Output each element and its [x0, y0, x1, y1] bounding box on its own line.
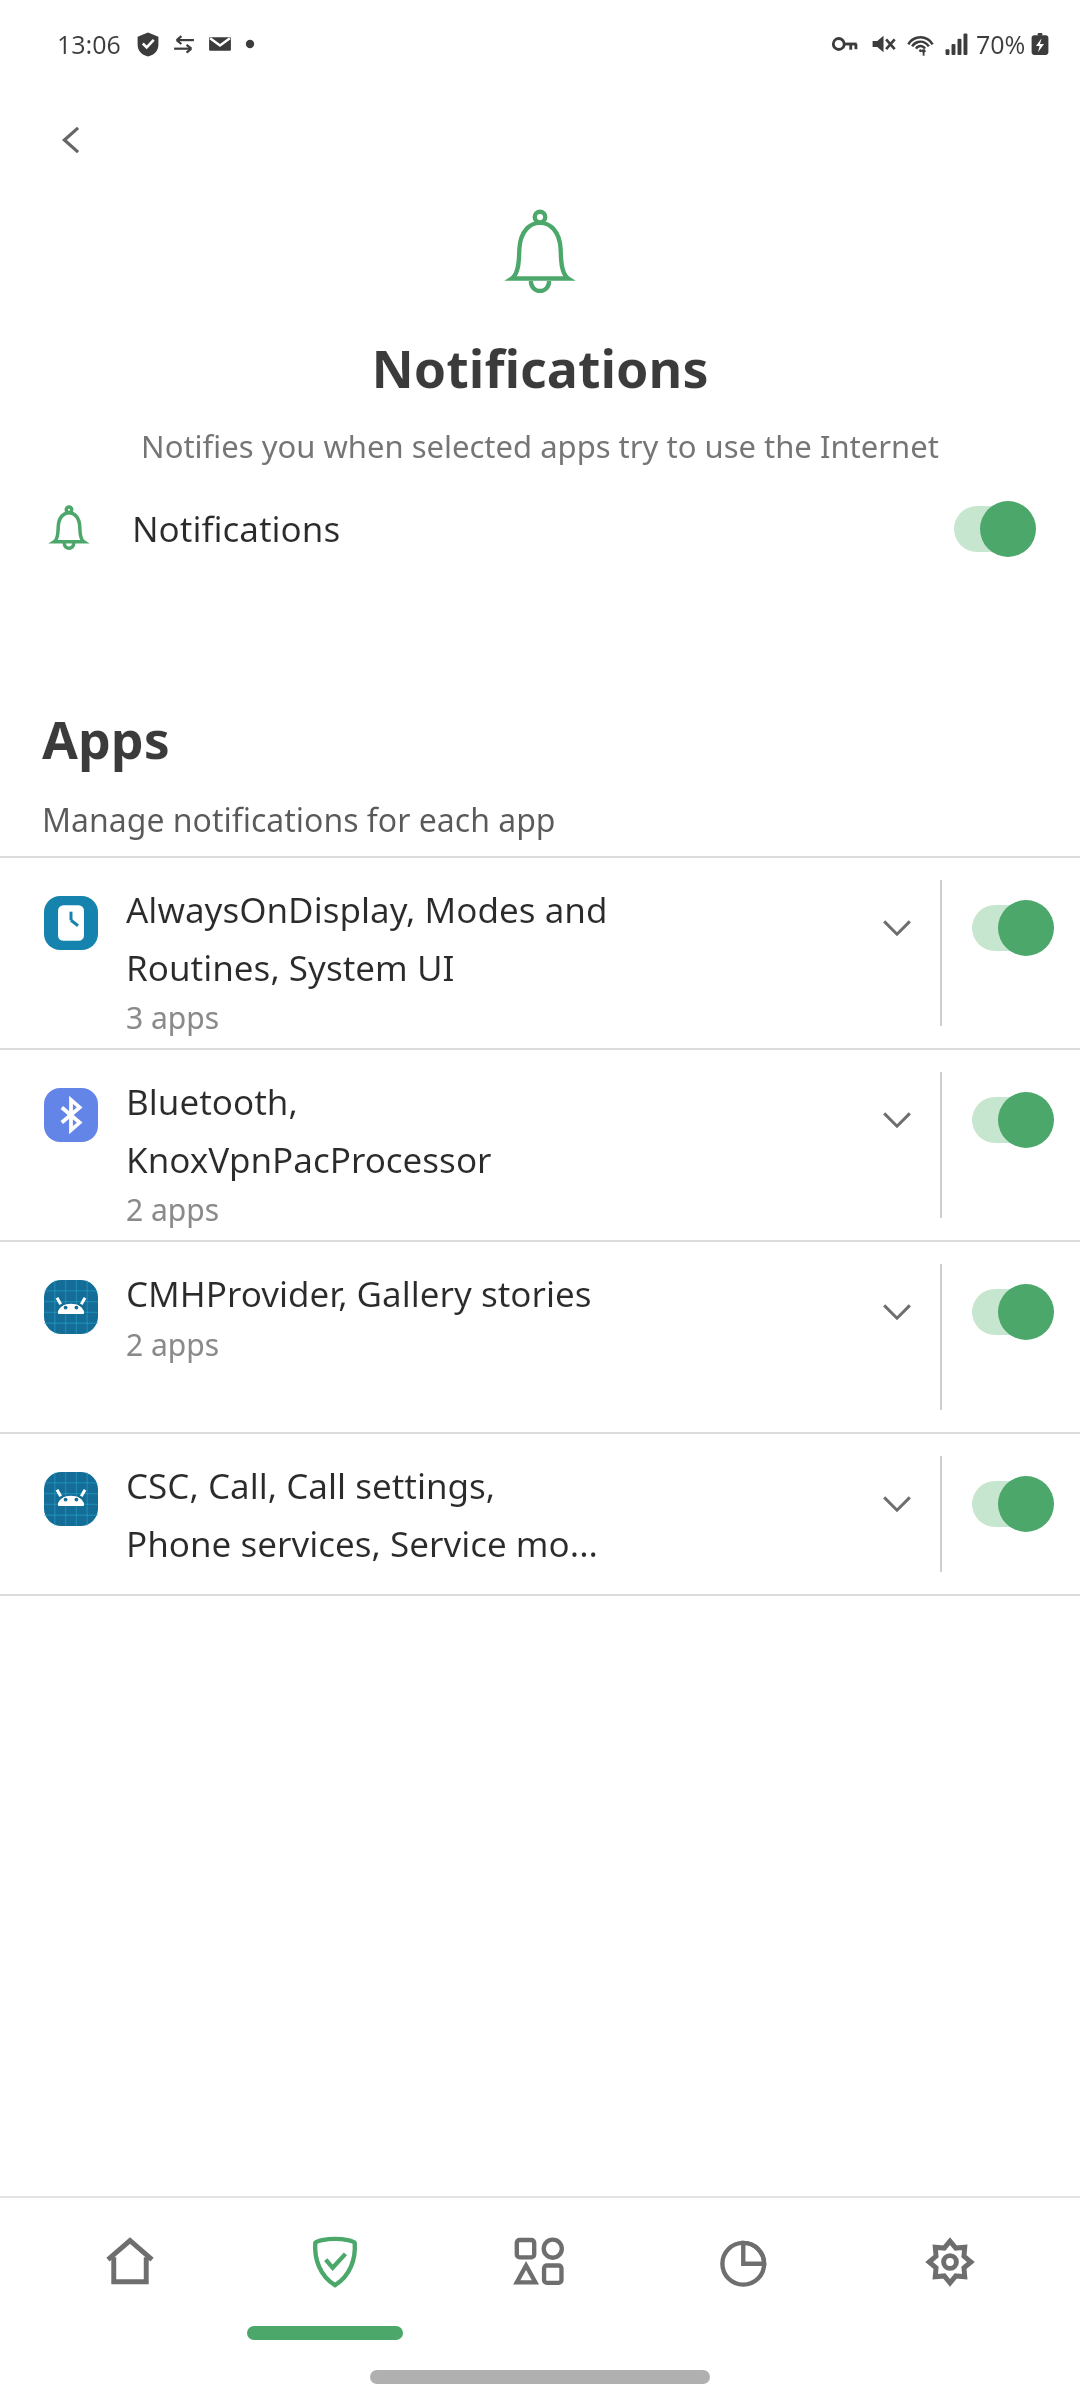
- button[interactable]: AlwaysOnDisplay, Modes and Routines, Sys…: [0, 858, 1080, 1048]
- staticText: Notifications: [132, 505, 341, 553]
- staticText: 2 apps: [126, 1324, 220, 1365]
- button[interactable]: CMHProvider, Gallery stories: [0, 1242, 1080, 1432]
- button[interactable]: CSC, Call, Call settings, Phone services…: [0, 1434, 1080, 1594]
- staticText: 3 apps: [126, 997, 220, 1038]
- staticText: 2 apps: [126, 1189, 220, 1230]
- button[interactable]: Protection: [260, 2198, 410, 2326]
- staticText: 70%: [976, 27, 1026, 61]
- staticText: Bluetooth, KnoxVpnPacProcessor: [126, 1078, 492, 1183]
- button[interactable]: Home: [55, 2198, 205, 2326]
- button[interactable]: Back: [34, 102, 110, 178]
- button[interactable]: Expand: [860, 890, 934, 964]
- button[interactable]: Expand: [860, 1274, 934, 1348]
- button[interactable]: Apps: [465, 2198, 615, 2326]
- button[interactable]: Bluetooth, KnoxVpnPacProcessor: [0, 1050, 1080, 1240]
- staticText: Notifications: [371, 332, 709, 403]
- button[interactable]: Expand: [860, 1466, 934, 1540]
- staticText: CMHProvider, Gallery stories: [126, 1270, 592, 1318]
- staticText: Apps: [42, 703, 170, 774]
- button[interactable]: Notifications: [0, 467, 1080, 591]
- button[interactable]: Expand: [860, 1082, 934, 1156]
- staticText: AlwaysOnDisplay, Modes and Routines, Sys…: [126, 886, 608, 991]
- staticText: CSC, Call, Call settings, Phone services…: [126, 1462, 598, 1567]
- button[interactable]: Stats: [670, 2198, 820, 2326]
- staticText: 13:06: [57, 27, 121, 61]
- staticText: Manage notifications for each app: [42, 798, 556, 842]
- staticText: Notifies you when selected apps try to u…: [58, 425, 1022, 467]
- button[interactable]: Settings: [875, 2198, 1025, 2326]
